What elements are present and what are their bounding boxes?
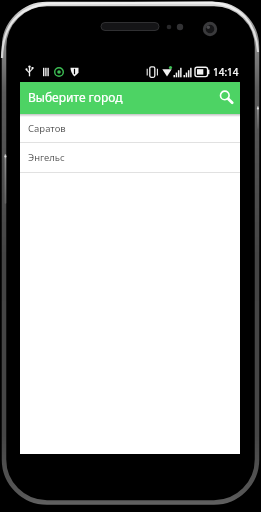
button[interactable] [210,83,240,113]
staticText: Саратов [28,122,66,135]
staticText: 14:14 [213,65,239,79]
staticText: Выберите город [28,89,123,105]
button[interactable]: Саратов [20,114,240,142]
button[interactable]: Энгельс [20,143,240,172]
staticText: Энгельс [28,151,65,164]
